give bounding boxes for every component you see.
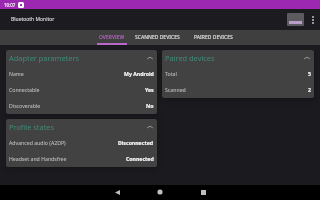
staticText: 2 [308,86,311,93]
button[interactable]: SCANNED DEVICES [127,30,187,45]
staticText: Total [165,70,308,77]
staticText: Connected [126,155,154,162]
staticText: My Android [124,70,154,77]
button[interactable]: Profile states [6,119,157,135]
staticText: Connectable [9,86,145,93]
button[interactable]: Bluetooth adapter selector [287,13,304,26]
staticText: Bluetooth Monitor [11,16,55,23]
button[interactable]: PAIRED DEVICES [187,30,239,45]
staticText: Advanced audio (A2DP) [9,139,118,146]
button[interactable]: Recent apps [196,185,210,199]
staticText: Headset and Handsfree [9,155,126,162]
staticText: Paired devices [165,53,304,63]
button[interactable]: Paired devices [162,50,314,66]
staticText: Yes [145,86,154,93]
staticText: Scanned [165,86,308,93]
button[interactable]: Adapter parameters [6,50,157,66]
staticText: 10:07 [4,2,16,8]
staticText: Name [9,70,124,77]
button[interactable]: Connectable [6,82,157,98]
staticText: Disconnected [118,139,154,146]
button[interactable]: Back [110,185,124,199]
button[interactable]: Headset and Handsfree [6,151,157,167]
staticText: Profile states [9,122,147,132]
button[interactable]: More options [308,12,317,28]
staticText: OVERVIEW [99,34,125,41]
button[interactable]: Total [162,66,314,82]
staticText: Adapter parameters [9,53,147,63]
button[interactable]: Scanned [162,82,314,98]
button[interactable]: Advanced audio (A2DP) [6,135,157,151]
staticText: 5 [308,70,311,77]
staticText: No [146,102,154,109]
button[interactable]: Home [153,185,167,199]
staticText: Discoverable [9,102,146,109]
staticText: SCANNED DEVICES [135,34,180,41]
button[interactable]: Discoverable [6,98,157,114]
button[interactable]: OVERVIEW [97,30,127,45]
staticText: PAIRED DEVICES [194,34,233,41]
button[interactable]: Name [6,66,157,82]
